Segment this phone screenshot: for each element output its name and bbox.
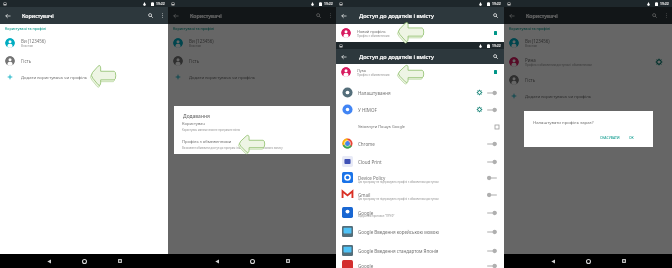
button[interactable]: Cloud Print	[336, 155, 504, 168]
staticText: Chrome	[358, 141, 375, 147]
button[interactable]: Лука	[336, 63, 504, 81]
button[interactable]: Search	[312, 7, 325, 24]
button[interactable]: Додати користувача чи профіль	[0, 69, 168, 85]
staticText: Новий профіль	[357, 29, 386, 34]
button[interactable]: Toggle Device Policy	[486, 175, 498, 181]
button[interactable]: Back	[336, 49, 352, 64]
button[interactable]: Toggle Google Введення стандартом Японія	[486, 248, 498, 254]
button[interactable]: Search	[489, 49, 502, 64]
staticText: Gmail	[358, 192, 371, 198]
button[interactable]: Back	[209, 254, 225, 268]
staticText: Користувачі	[22, 12, 54, 19]
staticText: Google	[358, 263, 374, 268]
staticText: Ви (123456)	[189, 38, 214, 44]
staticText: Цю програму не підтримують профілі з обм…	[358, 180, 439, 184]
staticText: ОК	[629, 135, 634, 140]
button[interactable]: Новий профіль	[336, 24, 504, 42]
button[interactable]: Ви (123456)	[168, 33, 336, 52]
button[interactable]: Google	[336, 259, 504, 268]
button[interactable]: Back	[41, 254, 57, 268]
staticText: Google Введення стандартом Японія	[358, 248, 439, 254]
staticText: Користувач	[182, 121, 205, 127]
button[interactable]: Додати користувача чи профіль	[168, 69, 336, 85]
staticText: Ви можете обмежити доступ до програм і в…	[182, 146, 283, 150]
button[interactable]: Search	[144, 7, 157, 24]
button[interactable]: Toggle Cloud Print	[486, 159, 498, 165]
button[interactable]: Toggle Налаштування	[486, 90, 498, 96]
button[interactable]: Chrome	[336, 137, 504, 150]
staticText: Профіль з обмеженнями	[357, 73, 390, 77]
button[interactable]: У HIMOF	[336, 103, 504, 116]
staticText: Користувачі та профілі	[509, 26, 551, 31]
staticText: Користувачі та профілі	[173, 26, 215, 31]
staticText: У HIMOF	[358, 107, 377, 113]
staticText: Користувачі та профілі	[5, 26, 47, 31]
button[interactable]: Back	[336, 7, 352, 24]
button[interactable]: Profile settings	[656, 59, 662, 65]
staticText: Рина	[525, 57, 536, 63]
button[interactable]: More options	[157, 7, 168, 24]
button[interactable]: Гість	[168, 52, 336, 69]
staticText: Цю програму не підтримують профілі з обм…	[358, 197, 439, 201]
staticText: Користувачі	[190, 12, 222, 19]
staticText: Доступ до додатків і вмісту	[359, 53, 434, 61]
button[interactable]: Back	[504, 7, 520, 24]
staticText: Device Policy	[358, 175, 386, 181]
button[interactable]: Recents	[616, 254, 632, 268]
button[interactable]: Toggle У HIMOF	[486, 107, 498, 113]
staticText: Профіль з обмеженнями	[357, 34, 390, 38]
button[interactable]: Toggle Google Введення корейською мовою	[486, 229, 498, 235]
button[interactable]: Recents	[280, 254, 296, 268]
button[interactable]: ОК	[627, 133, 636, 142]
button[interactable]: Search	[648, 7, 661, 24]
staticText: Додати користувача чи профіль	[21, 74, 88, 80]
button[interactable]: Home	[580, 254, 596, 268]
staticText: Налаштувати профіль зараз?	[533, 119, 594, 125]
button[interactable]: Профіль з обмеженнями	[174, 139, 330, 150]
button[interactable]: Google	[336, 206, 504, 219]
staticText: 19:22	[324, 1, 333, 6]
staticText: Гість	[189, 58, 200, 64]
button[interactable]: Home	[76, 254, 92, 268]
button[interactable]: Back	[168, 7, 184, 24]
button[interactable]: Back	[0, 7, 16, 24]
button[interactable]: Ви (123456)	[504, 33, 672, 52]
button[interactable]: Search	[489, 7, 502, 24]
button[interactable]: Додати користувача чи профіль	[504, 88, 672, 104]
staticText: СКАСУВАТИ	[600, 135, 620, 140]
button[interactable]: Device Policy	[336, 171, 504, 184]
button[interactable]: Toggle Gmail	[486, 192, 498, 198]
button[interactable]: Toggle Chrome	[486, 141, 498, 147]
button[interactable]: СКАСУВАТИ	[598, 133, 622, 142]
staticText: Налаштування	[358, 90, 391, 96]
staticText: 19:22	[492, 1, 501, 6]
staticText: Профіль з обмеженим доступом і обмеження…	[525, 63, 592, 67]
staticText: Користувачі	[526, 12, 558, 19]
button[interactable]: Увімкнути Пошук Google	[336, 120, 504, 133]
button[interactable]: Рина	[504, 52, 672, 71]
staticText: Лука	[357, 68, 366, 73]
staticText: Власник	[21, 44, 34, 48]
staticText: 19:22	[492, 43, 501, 48]
button[interactable]: Toggle Google	[486, 210, 498, 216]
staticText: Додавання	[183, 113, 210, 120]
staticText: Профіль з обмеженнями	[182, 139, 232, 145]
button[interactable]: Home	[244, 254, 260, 268]
button[interactable]: Гість	[0, 52, 168, 69]
button[interactable]: App settings	[477, 107, 482, 112]
staticText: Ви (123456)	[525, 38, 550, 44]
button[interactable]: More options	[661, 7, 672, 24]
button[interactable]: Google Введення корейською мовою	[336, 225, 504, 238]
button[interactable]: Ви (123456)	[0, 33, 168, 52]
button[interactable]: Toggle Google	[486, 263, 498, 268]
button[interactable]: Gmail	[336, 188, 504, 201]
button[interactable]: Recents	[112, 254, 128, 268]
button[interactable]: Користувач	[174, 121, 330, 132]
button[interactable]: Гість	[504, 71, 672, 88]
button[interactable]: Налаштування	[336, 86, 504, 99]
button[interactable]: More options	[325, 7, 336, 24]
button[interactable]: Back	[545, 254, 561, 268]
button[interactable]: Google Введення стандартом Японія	[336, 244, 504, 257]
button[interactable]: App settings	[477, 90, 482, 95]
staticText: Користувач матиме власне програмне вікно	[182, 128, 241, 132]
